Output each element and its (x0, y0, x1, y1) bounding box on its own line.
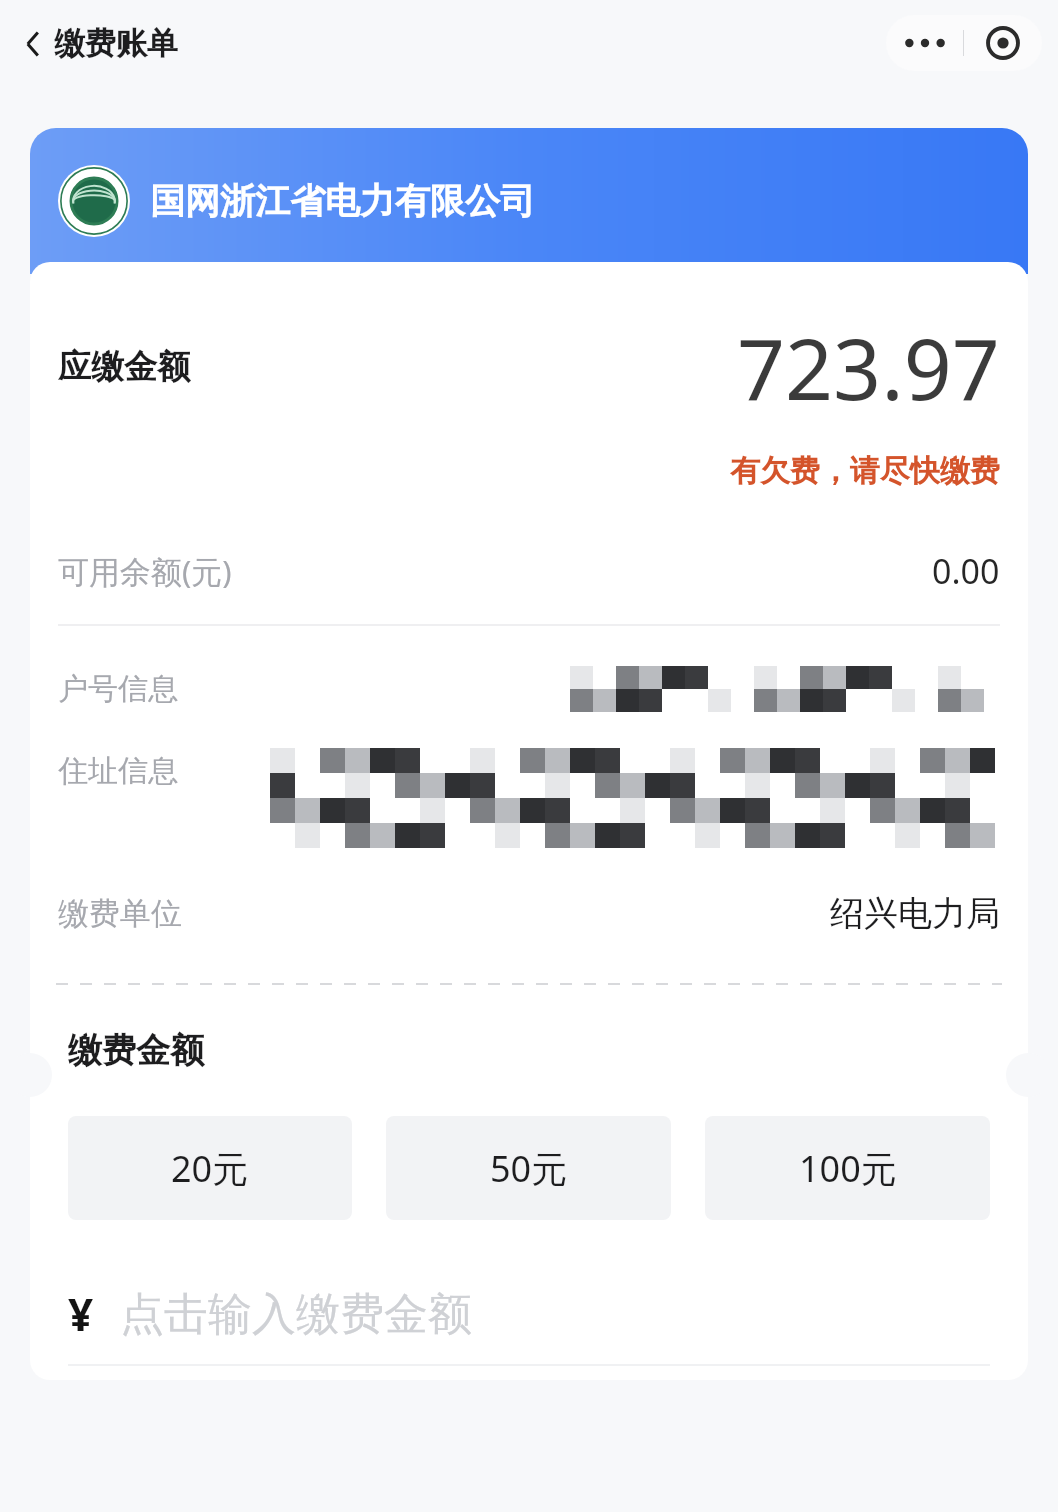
button[interactable]: Back (12, 18, 188, 69)
staticText: 0.00 (932, 548, 1000, 594)
button[interactable]: More (886, 15, 963, 71)
staticText: 缴费金额 (68, 1029, 204, 1072)
staticText: 绍兴电力局 (830, 892, 1000, 935)
staticText: 住址信息 (58, 752, 178, 790)
staticText: 缴费单位 (58, 894, 182, 933)
staticText: 100元 (799, 1144, 897, 1193)
staticText: 有欠费，请尽快缴费 (30, 452, 1000, 490)
staticText: 可用余额(元) (58, 550, 232, 592)
staticText: 应缴金额 (58, 346, 190, 388)
staticText: 户号信息 (58, 670, 178, 708)
button[interactable]: Close mini program (964, 15, 1042, 71)
staticText: 点击输入缴费金额 (120, 1287, 472, 1342)
button[interactable]: ¥ (30, 1276, 1028, 1364)
staticText: 20元 (171, 1144, 249, 1193)
button[interactable]: 100元 (705, 1116, 990, 1220)
staticText: ¥ (68, 1284, 94, 1344)
staticText: 国网浙江省电力有限公司 (150, 179, 535, 223)
staticText: 723.97 (737, 310, 1000, 424)
staticText: 50元 (490, 1144, 568, 1193)
button[interactable]: 50元 (386, 1116, 671, 1220)
staticText: 缴费账单 (54, 24, 178, 63)
button[interactable]: 20元 (68, 1116, 352, 1220)
